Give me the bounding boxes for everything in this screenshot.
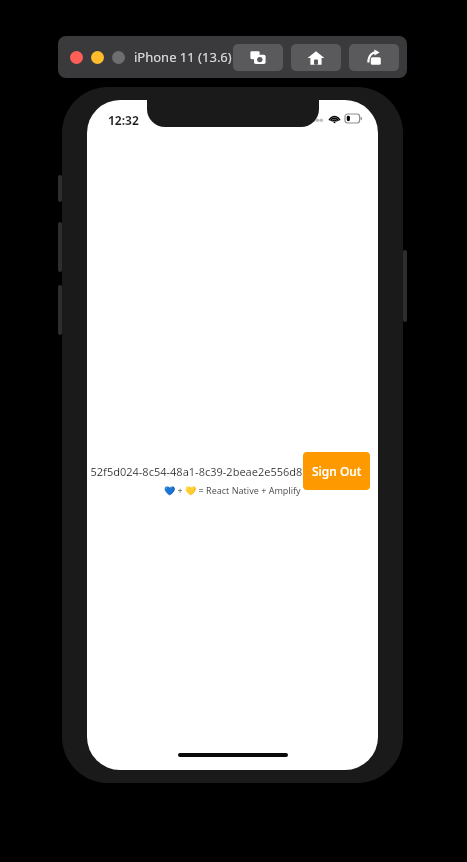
staticText: o 52f5d024-8c54-48a1-8c39-2beae2e556d8	[87, 464, 303, 479]
button[interactable]: Zoom	[112, 51, 125, 64]
button[interactable]: Sign Out	[303, 452, 370, 490]
button[interactable]: Share	[349, 44, 399, 71]
button[interactable]: Minimise	[91, 51, 104, 64]
button[interactable]: Home	[291, 44, 341, 71]
staticText: iPhone 11 (13.6)	[134, 48, 232, 66]
staticText: Sign Out	[312, 463, 362, 479]
button[interactable]: Close	[70, 51, 83, 64]
staticText: 12:32	[108, 112, 139, 128]
button[interactable]: Screenshot	[233, 44, 283, 71]
staticText: 💙 + 💛 = React Native + Amplify	[164, 484, 301, 496]
